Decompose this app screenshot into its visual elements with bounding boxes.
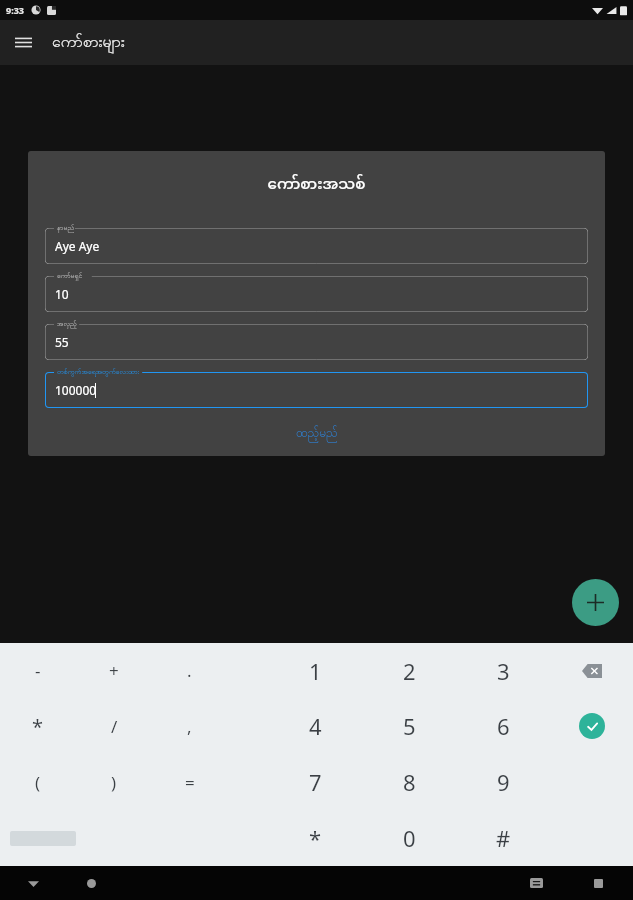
staticText: ကော်မရှင် (57, 271, 83, 281)
button[interactable]: * (0, 698, 76, 754)
other: Backspace (582, 664, 602, 678)
button[interactable]: Switch keyboard (523, 870, 549, 896)
staticText: + (109, 659, 119, 682)
button[interactable]: ) (76, 754, 152, 810)
staticText: တစ်ကွက်အရေအတွက်လေးထား (57, 367, 140, 377)
button[interactable]: 55 (45, 318, 588, 360)
staticText: နာမည် (57, 223, 75, 233)
staticText: - (35, 659, 41, 682)
staticText: ( (35, 771, 41, 794)
button[interactable]: / (76, 698, 152, 754)
staticText: , (187, 715, 192, 738)
button[interactable]: Recent apps (585, 870, 611, 896)
button[interactable]: ( (0, 754, 76, 810)
staticText: 2 (403, 656, 416, 686)
staticText: . (187, 659, 192, 682)
button[interactable]: Open navigation menu (0, 20, 46, 65)
button[interactable] (0, 810, 76, 866)
button[interactable]: 0 (362, 810, 456, 866)
staticText: 10 (55, 286, 69, 302)
staticText: / (111, 715, 118, 738)
button[interactable]: 8 (362, 754, 456, 810)
button[interactable]: 9 (456, 754, 550, 810)
staticText: 1 (309, 656, 322, 686)
staticText: Aye Aye (55, 238, 100, 254)
button[interactable]: 4 (268, 698, 362, 754)
button[interactable]: 100000 (45, 366, 588, 408)
staticText: 3 (497, 656, 510, 686)
staticText: 4 (309, 711, 322, 741)
staticText: ) (111, 771, 117, 794)
button[interactable]: Home (78, 870, 104, 896)
button[interactable]: Aye Aye (45, 222, 588, 264)
staticText: 8 (403, 767, 416, 797)
button[interactable]: 5 (362, 698, 456, 754)
staticText: 55 (55, 334, 69, 350)
staticText: အလှည့် (57, 319, 77, 329)
button[interactable]: , (152, 698, 227, 754)
staticText: ကော်စားအသစ် (28, 169, 605, 202)
staticText: 9 (497, 767, 510, 797)
button[interactable]: - (0, 643, 76, 698)
staticText: ကော်စားများ (52, 31, 125, 55)
button[interactable]: + (76, 643, 152, 698)
button[interactable]: Add new entry (572, 579, 619, 626)
staticText: 9:33 (6, 4, 24, 16)
button[interactable]: * (268, 810, 362, 866)
other: Done (579, 713, 605, 739)
button[interactable]: ထည့်မည် (284, 420, 350, 448)
button[interactable]: 6 (456, 698, 550, 754)
staticText: # (496, 823, 511, 853)
button[interactable]: 10 (45, 270, 588, 312)
button[interactable]: Backspace (550, 643, 633, 698)
staticText: 100000 (55, 382, 97, 398)
staticText: * (32, 713, 44, 740)
button[interactable]: # (456, 810, 550, 866)
staticText: * (309, 823, 322, 853)
button[interactable]: Done (550, 698, 633, 754)
button[interactable]: Hide keyboard (20, 870, 46, 896)
staticText: 5 (403, 711, 416, 741)
staticText: 7 (309, 767, 322, 797)
staticText: 0 (403, 823, 416, 853)
button[interactable]: 1 (268, 643, 362, 698)
staticText: = (185, 771, 195, 794)
button[interactable]: . (152, 643, 227, 698)
button[interactable]: = (152, 754, 227, 810)
staticText: ထည့်မည် (296, 425, 338, 443)
button[interactable]: 2 (362, 643, 456, 698)
button[interactable]: 7 (268, 754, 362, 810)
staticText: 6 (497, 711, 510, 741)
button[interactable]: 3 (456, 643, 550, 698)
